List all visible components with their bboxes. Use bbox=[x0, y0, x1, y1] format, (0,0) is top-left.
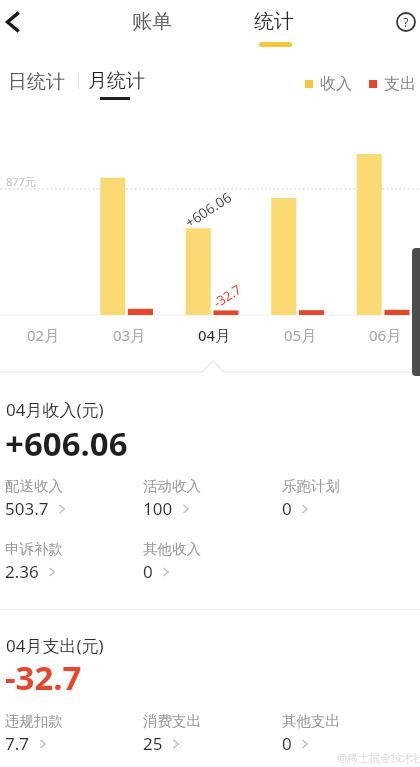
staticText: 0 bbox=[282, 732, 292, 755]
button[interactable]: 日统计 bbox=[4, 67, 69, 97]
button[interactable]: 其他支出 bbox=[282, 712, 340, 755]
button[interactable]: 账单 bbox=[128, 7, 176, 36]
button[interactable]: 配送收入 bbox=[5, 477, 67, 520]
button[interactable]: 其他收入 bbox=[143, 540, 201, 583]
staticText: 活动收入 bbox=[143, 477, 201, 495]
button[interactable]: 02月 bbox=[1, 323, 86, 347]
button[interactable]: Open drawer bbox=[412, 248, 420, 376]
staticText: +606.06 bbox=[5, 421, 128, 466]
button[interactable]: Help bbox=[384, 0, 420, 44]
staticText: 消费支出 bbox=[143, 712, 201, 730]
staticText: 乐跑计划 bbox=[282, 477, 340, 495]
staticText: 账单 bbox=[132, 9, 172, 34]
button[interactable]: 申诉补款 bbox=[5, 540, 63, 583]
staticText: 7.7 bbox=[5, 732, 30, 755]
button[interactable]: 乐跑计划 bbox=[282, 477, 340, 520]
staticText: 503.7 bbox=[5, 497, 49, 520]
button[interactable]: 03月 bbox=[87, 323, 172, 347]
button[interactable]: 06月 bbox=[343, 323, 420, 347]
staticText: -32.7 bbox=[209, 280, 244, 312]
staticText: @稀土掘金技术社区 bbox=[337, 750, 420, 765]
button[interactable]: 统计 bbox=[254, 9, 294, 47]
staticText: 0 bbox=[143, 560, 153, 583]
button[interactable]: Back bbox=[0, 0, 35, 44]
staticText: 03月 bbox=[113, 325, 146, 345]
staticText: 05月 bbox=[284, 325, 317, 345]
staticText: 其他支出 bbox=[282, 712, 340, 730]
staticText: 06月 bbox=[369, 325, 402, 345]
button[interactable]: 05月 bbox=[258, 323, 343, 347]
button[interactable]: 违规扣款 bbox=[5, 712, 63, 755]
staticText: 02月 bbox=[27, 325, 60, 345]
staticText: 04月收入(元) bbox=[6, 398, 104, 421]
staticText: -32.7 bbox=[5, 655, 82, 700]
staticText: 统计 bbox=[254, 9, 294, 34]
staticText: 0 bbox=[282, 497, 292, 520]
button[interactable]: 活动收入 bbox=[143, 477, 201, 520]
staticText: +606.06 bbox=[181, 187, 235, 232]
staticText: 100 bbox=[143, 497, 173, 520]
button[interactable]: 04月 bbox=[172, 323, 257, 347]
staticText: 877元 bbox=[6, 174, 36, 189]
staticText: 月统计 bbox=[88, 69, 145, 93]
staticText: 04月 bbox=[198, 325, 231, 345]
button[interactable]: 消费支出 bbox=[143, 712, 201, 755]
staticText: 申诉补款 bbox=[5, 540, 63, 558]
staticText: 25 bbox=[143, 732, 163, 755]
staticText: 其他收入 bbox=[143, 540, 201, 558]
staticText: 支出 bbox=[384, 74, 416, 94]
staticText: ? bbox=[403, 13, 409, 31]
staticText: 配送收入 bbox=[5, 477, 63, 495]
staticText: 日统计 bbox=[8, 70, 65, 94]
button[interactable]: 月统计 bbox=[88, 69, 145, 100]
staticText: 04月支出(元) bbox=[6, 634, 104, 657]
staticText: 2.36 bbox=[5, 560, 39, 583]
staticText: 违规扣款 bbox=[5, 712, 63, 730]
staticText: 收入 bbox=[320, 74, 352, 94]
